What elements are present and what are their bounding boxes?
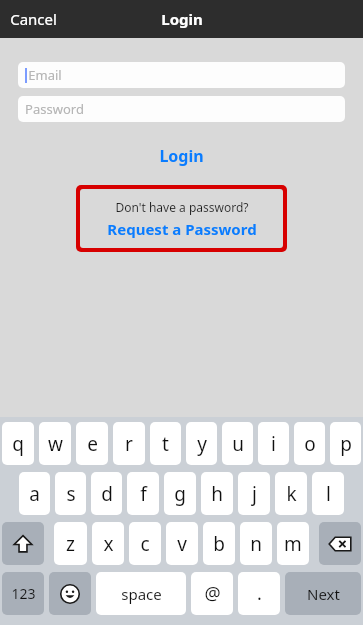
staticText: k bbox=[286, 481, 297, 507]
staticText: m bbox=[284, 531, 302, 557]
button[interactable]: m bbox=[277, 522, 309, 565]
button[interactable]: j bbox=[238, 472, 270, 515]
staticText: Next bbox=[307, 584, 340, 604]
button[interactable]: Password bbox=[18, 96, 345, 122]
button[interactable]: o bbox=[294, 422, 325, 465]
button[interactable]: Login bbox=[0, 145, 363, 167]
button[interactable]: s bbox=[55, 472, 86, 515]
button[interactable]: space bbox=[96, 572, 186, 615]
button[interactable]: @ bbox=[191, 572, 233, 615]
button[interactable]: x bbox=[92, 522, 124, 565]
staticText: h bbox=[211, 481, 223, 507]
button[interactable]: h bbox=[201, 472, 233, 515]
staticText: w bbox=[48, 431, 63, 457]
button[interactable]: b bbox=[203, 522, 235, 565]
button[interactable]: n bbox=[240, 522, 272, 565]
button[interactable]: v bbox=[166, 522, 198, 565]
button[interactable]: Next bbox=[285, 572, 361, 615]
staticText: t bbox=[162, 431, 169, 457]
button[interactable]: Email bbox=[18, 62, 345, 88]
button[interactable]: w bbox=[39, 422, 71, 465]
staticText: n bbox=[250, 531, 262, 557]
staticText: a bbox=[29, 481, 40, 507]
staticText: space bbox=[121, 584, 162, 604]
staticText: Don't have a password? bbox=[115, 199, 249, 215]
staticText: r bbox=[125, 431, 133, 457]
button[interactable]: Cancel bbox=[0, 3, 67, 35]
staticText: g bbox=[174, 481, 186, 507]
button[interactable]: g bbox=[164, 472, 196, 515]
staticText: Password bbox=[25, 100, 84, 118]
button[interactable]: k bbox=[275, 472, 307, 515]
button[interactable]: e bbox=[76, 422, 108, 465]
button[interactable]: . bbox=[238, 572, 280, 615]
button[interactable]: q bbox=[2, 422, 34, 465]
button[interactable]: i bbox=[258, 422, 289, 465]
staticText: b bbox=[213, 531, 225, 557]
button[interactable]: y bbox=[186, 422, 217, 465]
button[interactable]: z bbox=[54, 522, 87, 565]
button[interactable]: t bbox=[150, 422, 181, 465]
button[interactable]: Delete bbox=[319, 522, 361, 565]
staticText: d bbox=[101, 481, 113, 507]
staticText: i bbox=[271, 431, 276, 457]
staticText: j bbox=[252, 481, 257, 507]
staticText: Email bbox=[28, 66, 62, 84]
button[interactable]: f bbox=[127, 472, 159, 515]
staticText: l bbox=[326, 481, 331, 507]
button[interactable]: Don't have a password? bbox=[80, 189, 283, 248]
staticText: Cancel bbox=[10, 9, 57, 29]
button[interactable]: Emoji bbox=[49, 572, 91, 615]
button[interactable]: Shift bbox=[2, 522, 44, 565]
button[interactable]: u bbox=[222, 422, 253, 465]
staticText: Login bbox=[159, 145, 204, 167]
staticText: . bbox=[257, 581, 262, 606]
staticText: p bbox=[340, 431, 352, 457]
staticText: o bbox=[304, 431, 316, 457]
button[interactable]: p bbox=[330, 422, 361, 465]
staticText: 123 bbox=[11, 584, 36, 603]
button[interactable]: 123 bbox=[2, 572, 44, 615]
staticText: f bbox=[140, 481, 147, 507]
staticText: Request a Password bbox=[107, 219, 257, 239]
staticText: z bbox=[66, 531, 75, 557]
staticText: s bbox=[66, 481, 76, 507]
staticText: Login bbox=[161, 9, 203, 29]
button[interactable]: d bbox=[91, 472, 122, 515]
staticText: u bbox=[232, 431, 244, 457]
staticText: e bbox=[87, 431, 98, 457]
staticText: q bbox=[12, 431, 24, 457]
button[interactable]: r bbox=[113, 422, 145, 465]
button[interactable]: a bbox=[19, 472, 50, 515]
staticText: @ bbox=[204, 581, 221, 606]
staticText: x bbox=[103, 531, 114, 557]
staticText: c bbox=[140, 531, 150, 557]
button[interactable]: l bbox=[312, 472, 344, 515]
staticText: v bbox=[177, 531, 187, 557]
staticText: y bbox=[197, 431, 207, 457]
button[interactable]: c bbox=[129, 522, 161, 565]
